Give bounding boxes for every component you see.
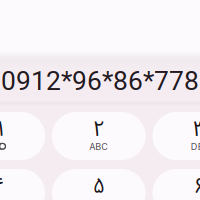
staticText: ABC (89, 141, 108, 152)
button[interactable]: One (0, 112, 45, 160)
staticText: ۳ (193, 106, 200, 152)
button[interactable]: ۳ DEF (152, 112, 200, 160)
staticText: ۲ (93, 106, 105, 152)
staticText: ۱ (0, 106, 6, 152)
staticText: DEF (191, 141, 200, 152)
button[interactable]: ۶ MNO (152, 169, 200, 200)
button[interactable]: ۵ JKL (52, 169, 146, 200)
button[interactable]: ۲ ABC (52, 112, 146, 160)
staticText: ۶ (193, 163, 200, 200)
staticText: ۴ (0, 163, 4, 200)
staticText: ۵ (93, 163, 105, 200)
button[interactable]: ۴ GHI (0, 169, 45, 200)
staticText: 0912*96*86*778 (1, 65, 199, 96)
